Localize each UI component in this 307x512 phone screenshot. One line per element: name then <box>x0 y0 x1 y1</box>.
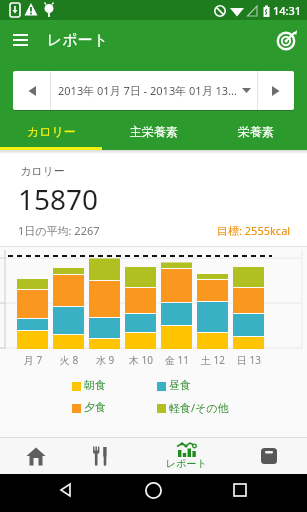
staticText: レポート <box>47 31 109 50</box>
button[interactable]: 2013年 01月 7日 - 2013年 01月 13... <box>51 71 257 110</box>
button[interactable]: 栄養素 <box>205 112 307 150</box>
staticText: 土 12 <box>197 353 229 367</box>
button[interactable] <box>6 26 34 54</box>
staticText: カロリー <box>27 124 76 139</box>
button[interactable]: 主栄養素 <box>103 112 205 150</box>
staticText: 昼食 <box>169 378 191 392</box>
button[interactable] <box>274 27 300 53</box>
staticText: カロリー <box>20 164 65 178</box>
button[interactable] <box>258 71 294 110</box>
staticText: 栄養素 <box>238 124 274 139</box>
button[interactable] <box>52 477 78 503</box>
staticText: 日 13 <box>233 353 265 367</box>
button[interactable]: カロリー <box>0 112 103 150</box>
staticText: 15870 <box>18 180 99 218</box>
staticText: 月 7 <box>17 353 49 367</box>
staticText: レポート <box>166 457 207 470</box>
button[interactable] <box>13 71 50 110</box>
staticText: 夕食 <box>84 400 106 414</box>
staticText: 目標: 2555kcal <box>217 223 291 238</box>
staticText: 火 8 <box>53 353 85 367</box>
staticText: 木 10 <box>125 353 157 367</box>
staticText: 主栄養素 <box>130 124 178 139</box>
staticText: 金 11 <box>161 353 193 367</box>
button[interactable]: レポート <box>154 438 218 474</box>
button[interactable] <box>241 438 297 474</box>
staticText: 2013年 01月 7日 - 2013年 01月 13... <box>58 83 237 98</box>
staticText: 水 9 <box>89 353 121 367</box>
button[interactable] <box>8 438 64 474</box>
staticText: 朝食 <box>84 378 106 392</box>
button[interactable] <box>72 438 128 474</box>
staticText: 14:31 <box>273 3 302 18</box>
button[interactable] <box>227 477 253 503</box>
staticText: 1日の平均: 2267 <box>18 223 100 238</box>
button[interactable] <box>140 477 167 504</box>
staticText: 軽食/その他 <box>169 400 229 415</box>
